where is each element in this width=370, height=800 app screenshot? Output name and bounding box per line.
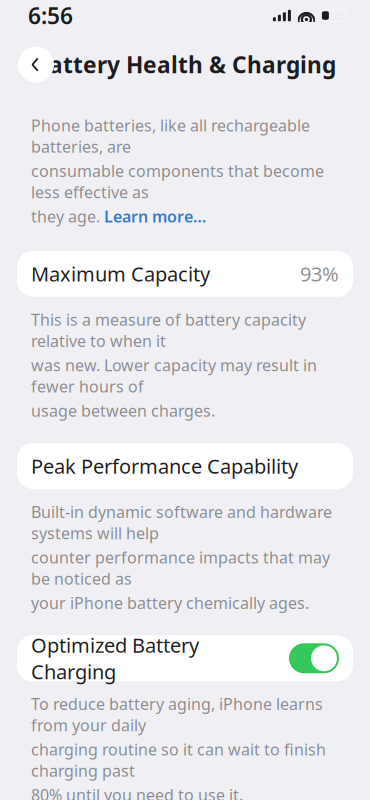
staticText: Phone batteries, like all rechargeable b…: [31, 115, 310, 157]
staticText: Peak Performance Capability: [31, 453, 298, 479]
button[interactable]: Optimized Battery Charging: [17, 635, 353, 681]
staticText: counter performance impacts that may be …: [31, 546, 330, 589]
staticText: your iPhone battery chemically ages.: [31, 592, 309, 613]
staticText: Learn more…: [104, 206, 206, 227]
staticText: Optimized Battery Charging: [31, 632, 199, 685]
staticText: 6:56: [28, 0, 73, 31]
staticText: charging routine so it can wait to finis…: [31, 739, 326, 781]
staticText: usage between charges.: [31, 400, 215, 421]
staticText: To reduce battery aging, iPhone learns f…: [31, 693, 323, 736]
button[interactable]: Learn more…: [104, 206, 206, 227]
staticText: they age.: [31, 206, 100, 227]
button[interactable]: Peak Performance Capability: [17, 443, 353, 489]
staticText: 80% until you need to use it.: [31, 784, 243, 800]
staticText: was new. Lower capacity may result in fe…: [31, 354, 317, 397]
button[interactable]: Back: [18, 47, 54, 83]
staticText: This is a measure of battery capacity re…: [31, 309, 306, 351]
staticText: Maximum Capacity: [31, 260, 210, 287]
staticText: Built-in dynamic software and hardware s…: [31, 501, 332, 544]
staticText: Battery Health & Charging: [34, 49, 336, 80]
staticText: consumable components that become less e…: [31, 160, 324, 203]
staticText: 93%: [300, 260, 339, 287]
